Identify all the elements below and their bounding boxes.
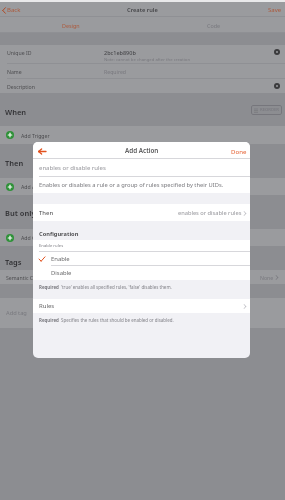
staticText: 'true' enables all specified rules, 'fal…	[61, 284, 172, 290]
staticText: Add Action	[21, 183, 48, 190]
button[interactable]: Options	[274, 83, 280, 89]
staticText: Description	[7, 83, 35, 90]
button[interactable]: Then	[33, 204, 250, 221]
staticText: Disable	[51, 269, 72, 277]
staticText: Add Action	[125, 146, 159, 155]
button[interactable]: Save	[268, 6, 282, 14]
staticText: Semantic Context	[6, 274, 49, 281]
button[interactable]: Add Trigger	[0, 126, 285, 144]
staticText: Specifies the rules that should be enabl…	[61, 317, 174, 323]
button[interactable]: REORDER	[254, 107, 279, 113]
staticText: Then	[5, 158, 24, 168]
staticText: None	[260, 274, 274, 281]
staticText: enables or disable rules	[39, 164, 106, 172]
button[interactable]: Code	[142, 17, 285, 33]
staticText: enables or disable rules	[178, 209, 242, 217]
staticText: Back	[7, 6, 21, 14]
staticText: Enable rules	[39, 243, 64, 249]
button[interactable]: Semantic Context	[0, 270, 285, 284]
button[interactable]: enables or disable rules	[33, 159, 250, 177]
button[interactable]: Design	[0, 17, 142, 33]
button[interactable]: Options	[274, 49, 280, 55]
button[interactable]: Rules	[33, 299, 250, 313]
staticText: Required	[104, 68, 127, 75]
button[interactable]: Name	[0, 64, 285, 79]
staticText: Create rule	[127, 6, 158, 14]
staticText: Enables or disables a rule or a group of…	[39, 181, 224, 189]
staticText: REORDER	[260, 107, 279, 113]
staticText: Required	[39, 284, 61, 290]
staticText: Tags	[5, 257, 22, 267]
button[interactable]: Unique ID	[0, 45, 285, 64]
staticText: Configuration	[39, 230, 79, 238]
staticText: When	[5, 107, 27, 117]
staticText: Name	[7, 68, 22, 75]
staticText: Note: cannot be changed after the creati…	[104, 56, 191, 62]
staticText: Code	[207, 22, 221, 29]
staticText: Add Condition	[21, 234, 56, 241]
staticText: Unique ID	[7, 49, 32, 56]
button[interactable]: Disable	[33, 266, 250, 280]
button[interactable]: Add Action	[0, 178, 285, 195]
button[interactable]: Add Condition	[0, 229, 285, 246]
staticText: Enable	[51, 255, 70, 263]
button[interactable]: Back	[37, 146, 47, 156]
button[interactable]: Back	[2, 6, 21, 14]
button[interactable]: Add tag	[0, 298, 285, 328]
staticText: Required	[39, 317, 61, 323]
staticText: Add tag	[6, 309, 27, 317]
staticText: Rules	[39, 302, 55, 310]
button[interactable]: Done	[231, 147, 247, 155]
staticText: Add Trigger	[21, 132, 50, 139]
staticText: But only if	[5, 208, 43, 218]
staticText: 2bc1eb890b	[104, 49, 136, 56]
button[interactable]: Enable	[33, 252, 250, 266]
staticText: Then	[39, 209, 54, 217]
button[interactable]: Description	[0, 79, 285, 93]
button[interactable]: Enables or disables a rule or a group of…	[33, 177, 250, 193]
staticText: Design	[62, 22, 80, 29]
